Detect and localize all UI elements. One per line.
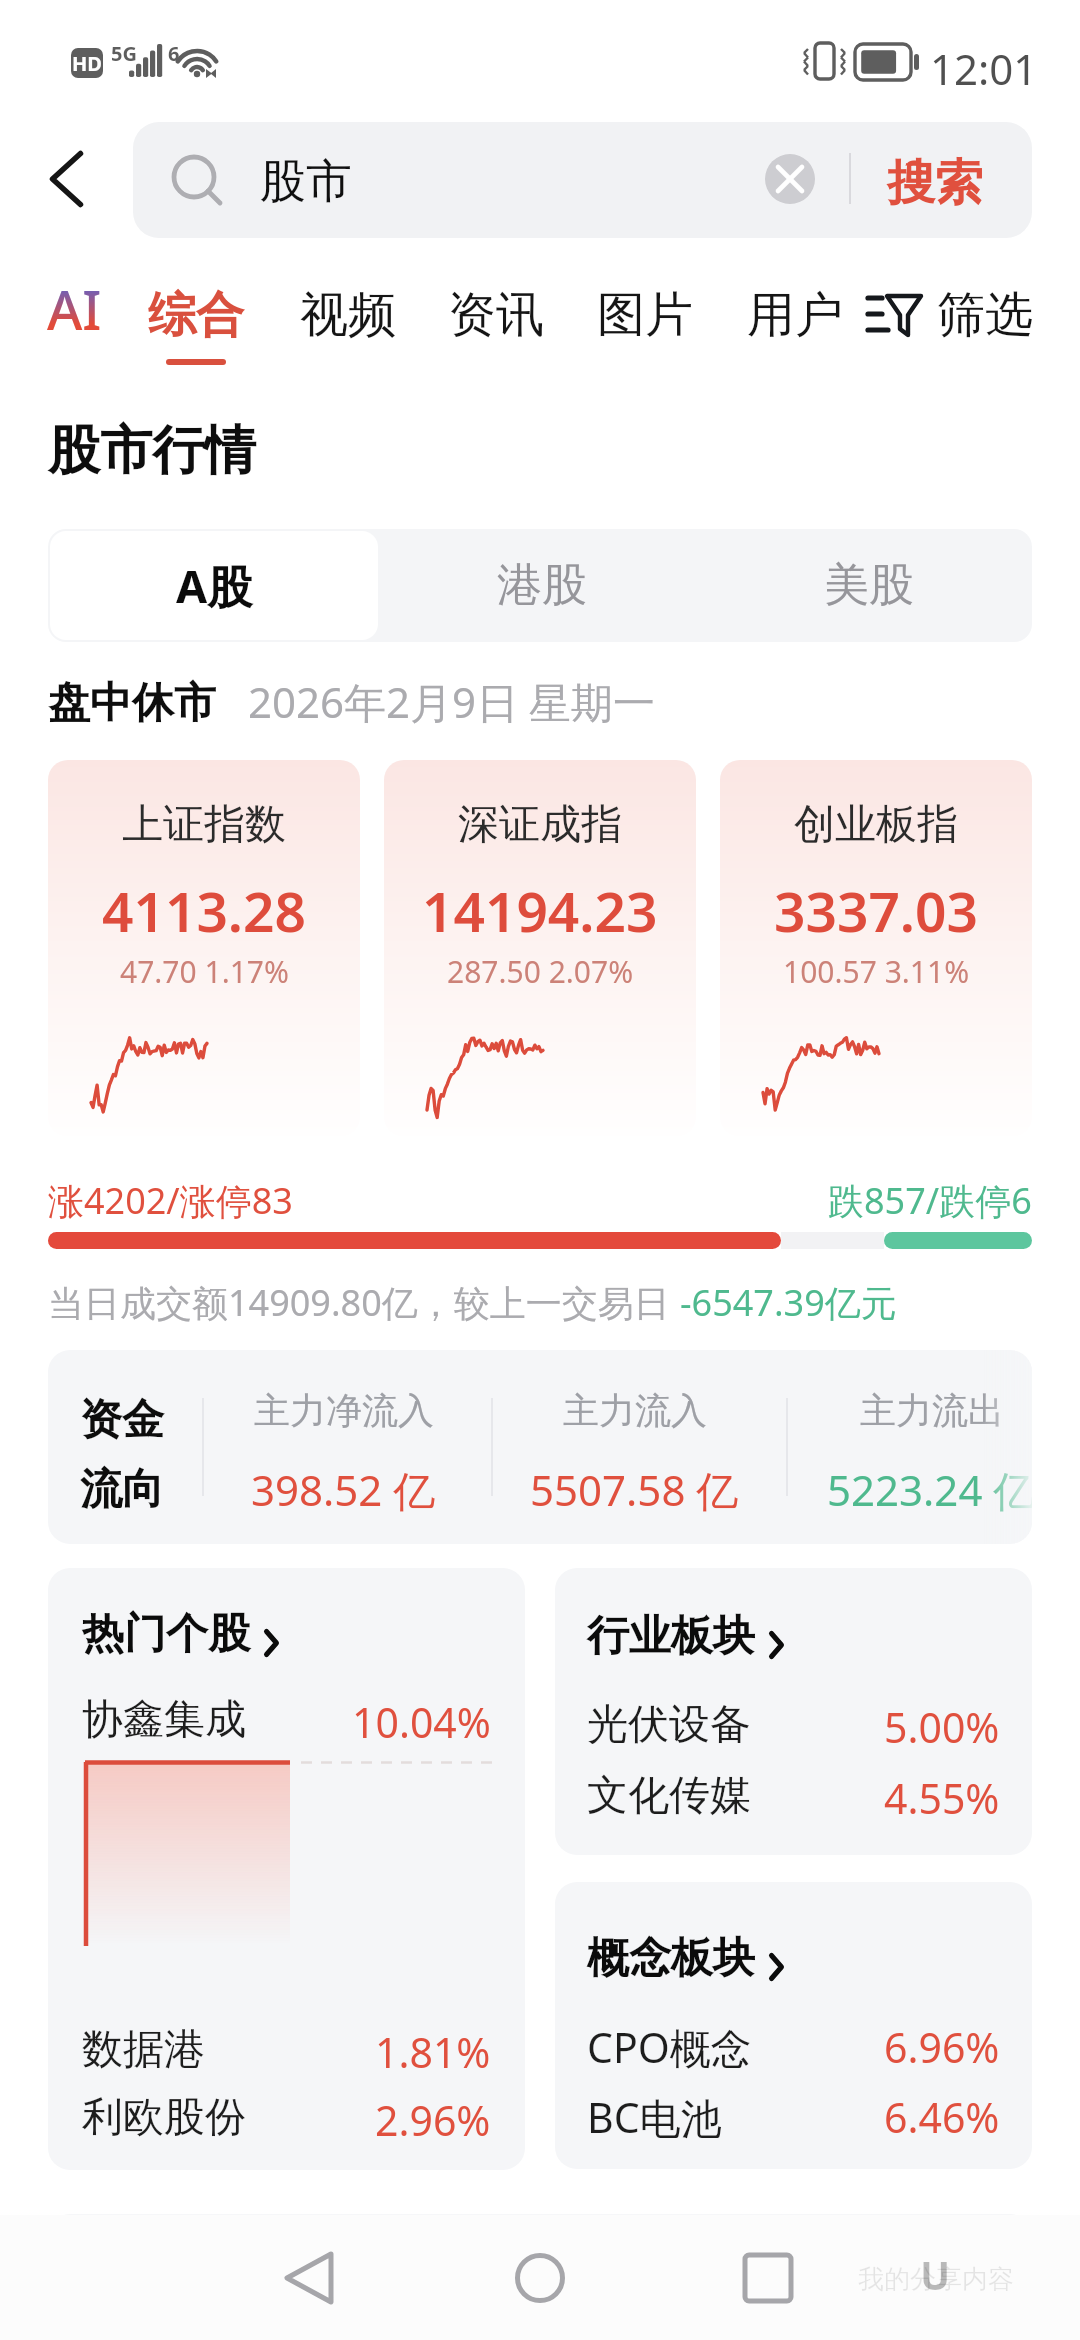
staticText: U	[920, 2247, 951, 2301]
staticText: 5G	[111, 40, 137, 67]
staticText: 47.70 1.17%	[120, 951, 289, 992]
staticText: 主力净流入	[254, 1388, 434, 1433]
staticText: 文化传媒	[587, 1770, 751, 1822]
button[interactable]: 用户	[733, 272, 857, 354]
staticText: 2.96%	[375, 2092, 491, 2148]
staticText: 10.04%	[352, 1694, 491, 1750]
staticText: 利欧股份	[82, 2092, 246, 2144]
staticText: 主力流出	[860, 1388, 1004, 1433]
staticText: 当日成交额14909.80亿，较上一交易日	[48, 1278, 680, 1327]
staticText: 视频	[300, 285, 396, 345]
staticText: 1.81%	[375, 2024, 491, 2080]
staticText: 287.50 2.07%	[447, 951, 634, 992]
staticText: 港股	[497, 557, 587, 614]
staticText: 4113.28	[102, 873, 306, 948]
staticText: 6	[168, 40, 180, 67]
button[interactable]: 深证成指	[384, 760, 696, 1136]
staticText: 跌857/跌停6	[828, 1176, 1032, 1225]
staticText: 5223.24 亿	[827, 1461, 1032, 1518]
staticText: 3337.03	[774, 873, 978, 948]
staticText: 筛选	[937, 285, 1033, 345]
staticText: 6.96%	[884, 2019, 1000, 2075]
button[interactable]: 热门个股	[48, 1568, 525, 2170]
staticText: 股市	[260, 153, 352, 211]
staticText: 5.00%	[884, 1699, 1000, 1755]
button[interactable]: 上证指数	[48, 760, 360, 1136]
staticText: A股	[176, 555, 253, 616]
button[interactable]: 资金	[48, 1350, 1032, 1544]
staticText: 2026年2月9日 星期一	[248, 673, 656, 730]
button[interactable]: AI	[31, 268, 117, 350]
staticText: 概念板块	[587, 1932, 755, 1985]
button[interactable]: 综合	[134, 272, 258, 372]
staticText: 我的分享内容	[858, 2263, 1014, 2296]
button[interactable]: 行业板块	[555, 1568, 1032, 1855]
staticText: 用户	[747, 285, 843, 345]
staticText: 光伏设备	[587, 1699, 751, 1751]
button[interactable]: 筛选	[930, 272, 1040, 354]
staticText: 398.52 亿	[251, 1461, 436, 1518]
button[interactable]: Back	[271, 2240, 347, 2316]
staticText: BC电池	[587, 2089, 722, 2145]
button[interactable]: 港股	[378, 531, 706, 640]
staticText: 行业板块	[587, 1610, 755, 1663]
staticText: 盘中休市	[48, 677, 216, 730]
button[interactable]: Clear	[765, 154, 815, 204]
staticText: 4.55%	[884, 1770, 1000, 1826]
staticText: 100.57 3.11%	[783, 951, 970, 992]
button[interactable]: 概念板块	[555, 1882, 1032, 2169]
button[interactable]: 概念板块	[587, 1932, 784, 1985]
button[interactable]: 行业板块	[587, 1610, 784, 1663]
staticText: CPO概念	[587, 2019, 752, 2075]
staticText: 上证指数	[122, 799, 286, 851]
staticText: 资金	[80, 1394, 164, 1447]
staticText: 协鑫集成	[82, 1694, 246, 1746]
staticText: 5507.58 亿	[530, 1461, 739, 1518]
staticText: -6547.39亿元	[680, 1278, 897, 1327]
staticText: 12:01	[930, 40, 1038, 97]
button[interactable]: A股	[50, 531, 378, 640]
staticText: 主力流入	[563, 1388, 707, 1433]
staticText: 综合	[148, 285, 244, 345]
staticText: 流向	[80, 1463, 164, 1516]
button[interactable]: Home	[502, 2240, 578, 2316]
staticText: 创业板指	[794, 799, 958, 851]
button[interactable]: 资讯	[434, 272, 558, 354]
button[interactable]: 图片	[583, 272, 707, 354]
button[interactable]: 筛选	[862, 288, 924, 342]
button[interactable]: 热门个股	[82, 1608, 279, 1661]
staticText: 图片	[597, 285, 693, 345]
button[interactable]: 美股	[706, 531, 1032, 640]
button[interactable]: 股市	[133, 122, 1032, 238]
staticText: 股市行情	[48, 418, 256, 484]
button[interactable]: 创业板指	[720, 760, 1032, 1136]
staticText: 资讯	[448, 285, 544, 345]
staticText: AI	[47, 272, 102, 346]
button[interactable]: 视频	[286, 272, 410, 354]
staticText: 美股	[824, 557, 914, 614]
staticText: HD	[72, 50, 102, 77]
staticText: 6.46%	[884, 2089, 1000, 2145]
staticText: 涨4202/涨停83	[48, 1176, 293, 1225]
button[interactable]: Back	[16, 119, 116, 239]
staticText: 热门个股	[82, 1608, 250, 1661]
staticText: 搜索	[887, 153, 983, 213]
staticText: 深证成指	[458, 799, 622, 851]
staticText: 数据港	[82, 2024, 205, 2076]
button[interactable]: Recents	[730, 2240, 806, 2316]
staticText: 14194.23	[422, 873, 658, 948]
